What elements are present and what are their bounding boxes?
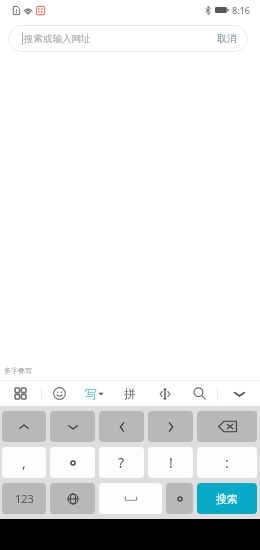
button[interactable]: ! (148, 447, 193, 478)
button[interactable]: Backspace (197, 411, 257, 442)
staticText: ? (118, 453, 125, 472)
button[interactable]: : (197, 447, 257, 478)
button[interactable]: Search (182, 381, 217, 406)
staticText: : (225, 453, 229, 472)
button[interactable]: Hide keyboard (218, 381, 260, 406)
button[interactable]: Move cursor (147, 381, 182, 406)
staticText: 8:16 (232, 4, 250, 16)
staticText: 搜索 (216, 492, 238, 506)
staticText: , (22, 453, 26, 472)
button[interactable]: Language (50, 483, 95, 514)
button[interactable]: 123 (2, 483, 46, 514)
button[interactable]: Right (148, 411, 193, 442)
button[interactable]: Emoji (42, 381, 77, 406)
button[interactable]: Space (99, 483, 162, 514)
staticText: 取消 (217, 32, 237, 45)
staticText: ! (169, 453, 173, 472)
button[interactable]: 搜索 (197, 483, 257, 514)
button[interactable]: Down (50, 411, 95, 442)
button[interactable]: 拼 (112, 381, 147, 406)
staticText: 写 (85, 386, 97, 401)
button[interactable]: 搜索或输入网址 (8, 25, 248, 52)
button[interactable]: Period (166, 483, 193, 514)
button[interactable]: Left (99, 411, 144, 442)
button[interactable]: Full stop (50, 447, 95, 478)
button[interactable]: Keyboard layouts (0, 381, 41, 406)
button[interactable]: , (2, 447, 46, 478)
button[interactable]: ? (99, 447, 144, 478)
button[interactable]: Up (2, 411, 46, 442)
staticText: 多字叠写 (4, 366, 32, 375)
button[interactable]: 写 (77, 381, 112, 406)
staticText: 拼 (124, 386, 136, 401)
staticText: 123 (15, 491, 34, 506)
staticText: 搜索或输入网址 (24, 33, 91, 45)
